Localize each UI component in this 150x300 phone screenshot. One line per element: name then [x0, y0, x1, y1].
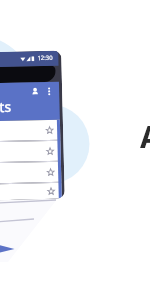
button[interactable] — [0, 162, 61, 184]
staticText: A — [140, 116, 150, 157]
staticText: Contacts — [0, 97, 12, 117]
button[interactable] — [0, 120, 60, 142]
button[interactable]: Add contact — [30, 87, 39, 96]
staticText: 12:30 — [37, 54, 53, 62]
button[interactable] — [0, 183, 62, 201]
button[interactable] — [0, 141, 61, 163]
button[interactable]: More options — [46, 87, 52, 96]
